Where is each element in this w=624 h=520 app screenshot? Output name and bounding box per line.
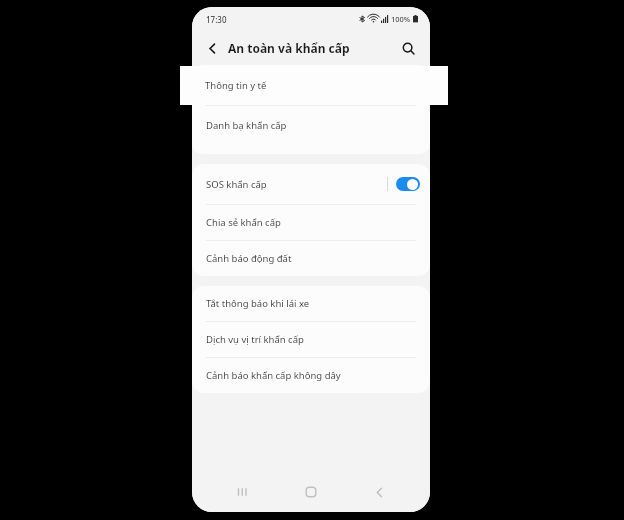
button[interactable]: Recents [226, 475, 260, 509]
staticText: SOS khẩn cấp [206, 178, 387, 191]
staticText: Danh bạ khẩn cấp [206, 119, 287, 132]
button[interactable]: Tắt thông báo khi lái xe [192, 286, 430, 321]
button[interactable]: Back [362, 475, 396, 509]
staticText: Chia sẻ khẩn cấp [206, 216, 281, 229]
button[interactable]: Chia sẻ khẩn cấp [192, 205, 430, 240]
button[interactable]: Back [200, 36, 224, 60]
button[interactable]: Dịch vụ vị trí khẩn cấp [192, 322, 430, 357]
staticText: Tắt thông báo khi lái xe [206, 297, 310, 310]
button[interactable]: Thông tin y tế [180, 66, 448, 105]
button[interactable]: Cảnh báo khẩn cấp không dây [192, 358, 430, 393]
staticText: 100% [391, 14, 411, 24]
button[interactable]: SOS khẩn cấp toggle [396, 177, 420, 191]
button[interactable]: Cảnh báo động đất [192, 241, 430, 276]
button[interactable]: Danh bạ khẩn cấp [192, 106, 430, 144]
staticText: 17:30 [206, 14, 227, 25]
staticText: Cảnh báo động đất [206, 252, 292, 265]
staticText: Dịch vụ vị trí khẩn cấp [206, 333, 304, 346]
button[interactable]: Search [396, 36, 420, 60]
staticText: Thông tin y tế [205, 79, 267, 92]
staticText: Cảnh báo khẩn cấp không dây [206, 369, 341, 382]
staticText: Thông tin y tế [206, 79, 268, 92]
staticText: An toàn và khẩn cấp [228, 40, 350, 56]
button[interactable]: Home [294, 475, 328, 509]
button[interactable]: Thông tin y tế [192, 65, 430, 105]
button[interactable]: SOS khẩn cấp [192, 164, 430, 204]
